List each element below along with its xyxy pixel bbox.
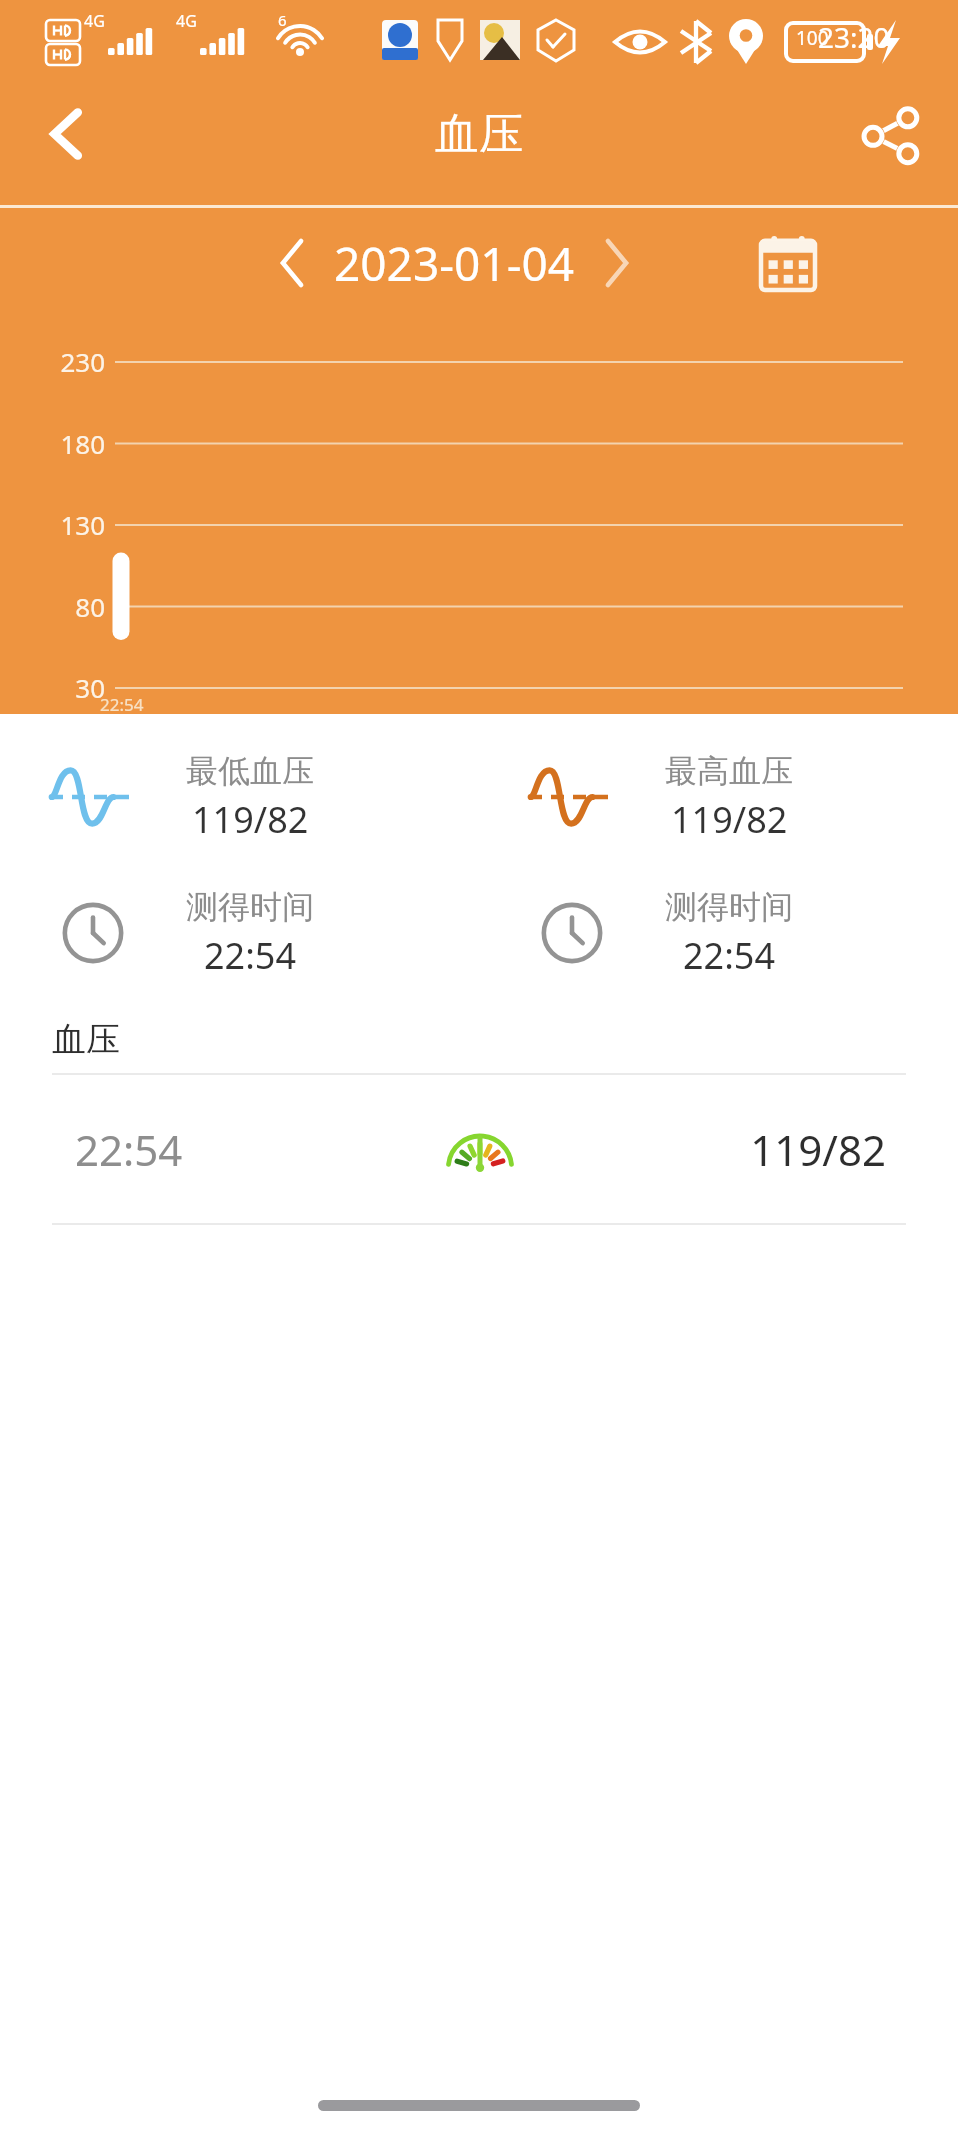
staticText: 100 [796, 25, 829, 51]
staticText: 230 [25, 344, 105, 379]
staticText: 血压 [52, 1018, 120, 1061]
button[interactable]: Back [12, 79, 122, 189]
staticText: 80 [25, 589, 105, 624]
button[interactable]: Pick date [740, 215, 836, 311]
staticText: 119/82 [192, 795, 309, 844]
staticText: 血压 [435, 107, 523, 162]
button[interactable]: 22:54 [0, 1075, 958, 1223]
staticText: 180 [25, 426, 105, 461]
staticText: 测得时间 [186, 887, 314, 927]
button[interactable]: 测得时间 [0, 874, 479, 992]
staticText: 2023-01-04 [334, 232, 575, 295]
staticText: 最低血压 [186, 751, 314, 791]
staticText: 119/82 [639, 1121, 886, 1178]
staticText: 119/82 [671, 795, 788, 844]
staticText: 22:54 [683, 931, 776, 980]
button[interactable]: 最低血压 [0, 738, 479, 856]
button[interactable]: Previous day [256, 227, 328, 299]
staticText: 6 [278, 10, 287, 30]
button[interactable]: Next day [581, 227, 653, 299]
staticText: 测得时间 [665, 887, 793, 927]
staticText: 130 [25, 507, 105, 542]
staticText: 23:20 [818, 18, 890, 56]
button[interactable]: Share [836, 79, 946, 189]
staticText: 22:54 [100, 693, 144, 716]
button[interactable]: 最高血压 [479, 738, 958, 856]
staticText: 22:54 [204, 931, 297, 980]
staticText: 4G [176, 10, 197, 32]
button[interactable]: 测得时间 [479, 874, 958, 992]
staticText: 30 [25, 670, 105, 705]
staticText: 22:54 [75, 1121, 320, 1178]
staticText: 最高血压 [665, 751, 793, 791]
staticText: 4G [84, 10, 105, 32]
